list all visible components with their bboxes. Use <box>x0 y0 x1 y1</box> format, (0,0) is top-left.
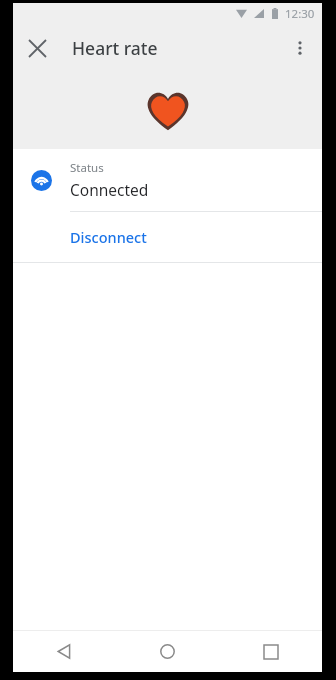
button[interactable]: More options <box>278 26 322 70</box>
staticText: 12:30 <box>285 6 315 22</box>
button[interactable]: Recent apps <box>219 631 322 672</box>
staticText: Heart rate <box>72 36 158 60</box>
button[interactable]: Disconnect <box>13 212 322 262</box>
staticText: Disconnect <box>70 227 147 247</box>
staticText: Connected <box>70 179 149 200</box>
button[interactable]: Close <box>13 24 61 72</box>
button[interactable]: Status <box>13 149 322 211</box>
button[interactable]: Home <box>116 631 219 672</box>
staticText: Status <box>70 160 104 176</box>
button[interactable]: Back <box>13 631 116 672</box>
